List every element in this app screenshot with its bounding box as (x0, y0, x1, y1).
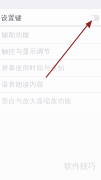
staticText: 设置键 (1, 14, 22, 22)
button[interactable]: 设置键 (0, 9, 101, 25)
staticText: 屏幕使用时间与通知 (1, 64, 64, 72)
button[interactable]: 语音朗读内容 (0, 76, 101, 92)
staticText: 辅助功能 (1, 31, 29, 39)
staticText: 语音朗读内容 (1, 80, 43, 89)
button[interactable]: 辅助功能 (0, 27, 101, 43)
button[interactable]: 旁白与放大器缩放功能 (0, 93, 101, 109)
staticText: 触控与显示调节 (1, 47, 50, 56)
staticText: 软件技巧 (64, 161, 96, 171)
staticText: 旁白与放大器缩放功能 (1, 97, 71, 105)
button[interactable]: 触控与显示调节 (0, 43, 101, 59)
button[interactable]: 屏幕使用时间与通知 (0, 60, 101, 76)
